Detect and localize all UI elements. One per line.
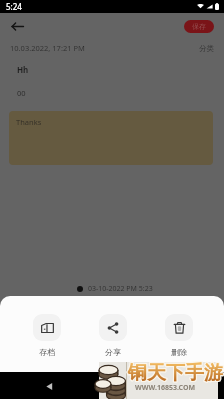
button[interactable]: 分类 (199, 44, 214, 53)
staticText: 删除 (171, 347, 187, 357)
staticText: Thanks (16, 117, 42, 127)
staticText: 5:24 (6, 1, 22, 12)
staticText: 分享 (105, 347, 121, 357)
staticText: Hh (17, 64, 29, 75)
button[interactable]: Back (40, 377, 58, 395)
button[interactable]: Back (5, 14, 29, 38)
staticText: 分类 (199, 44, 214, 53)
staticText: 保存 (192, 22, 206, 31)
staticText: 铜天下手游 (128, 361, 223, 385)
staticText: 存档 (39, 347, 55, 357)
button[interactable]: Hh (17, 57, 224, 81)
staticText: 03-10-2022 PM 5:23 (88, 284, 153, 294)
staticText: 00 (17, 88, 26, 98)
button[interactable]: Archive (25, 314, 69, 357)
staticText: WWW.16853.COM (135, 383, 196, 393)
button[interactable]: Share (91, 314, 135, 357)
button[interactable]: 保存 (184, 20, 214, 33)
button[interactable]: Delete (157, 314, 201, 357)
staticText: 铜天下手游 (128, 361, 223, 385)
staticText: 10.03.2022, 17:21 PM (10, 43, 85, 53)
